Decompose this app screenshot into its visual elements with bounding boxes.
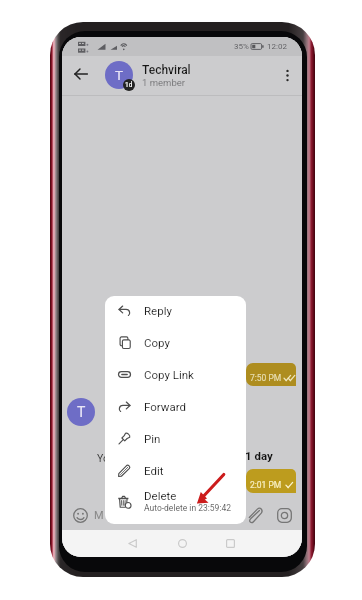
- staticText: Copy Link: [144, 368, 194, 381]
- staticText: T: [115, 67, 124, 83]
- button[interactable]: Attach: [243, 504, 265, 526]
- staticText: Reply: [144, 304, 172, 317]
- staticText: Auto-delete in 23:59:42: [144, 503, 232, 513]
- staticText: 1 day: [245, 449, 273, 462]
- button[interactable]: Back: [119, 530, 145, 556]
- button[interactable]: Edit: [105, 454, 246, 486]
- staticText: Yo: [97, 452, 109, 464]
- staticText: T: [77, 404, 86, 420]
- button[interactable]: Pin: [105, 422, 246, 454]
- button[interactable]: Copy Link: [105, 358, 246, 390]
- button[interactable]: More options: [274, 56, 300, 95]
- button[interactable]: Reply: [105, 296, 246, 326]
- button[interactable]: Back: [67, 60, 95, 88]
- staticText: 12:02: [267, 42, 287, 51]
- button[interactable]: Copy: [105, 326, 246, 358]
- staticText: 1d: [125, 81, 133, 89]
- staticText: Edit: [144, 464, 164, 477]
- staticText: 1 member: [142, 77, 185, 88]
- staticText: Copy: [144, 336, 170, 349]
- button[interactable]: Forward: [105, 390, 246, 422]
- button[interactable]: Emoji: [69, 504, 91, 526]
- staticText: 2:01 PM: [250, 480, 282, 490]
- staticText: M: [94, 509, 104, 522]
- button[interactable]: Home: [169, 530, 195, 556]
- staticText: 7:50 PM: [250, 373, 282, 383]
- button[interactable]: Delete: [105, 486, 246, 522]
- button[interactable]: Camera: [273, 504, 295, 526]
- staticText: Pin: [144, 432, 161, 445]
- staticText: Delete: [144, 489, 177, 502]
- staticText: 35%: [234, 42, 249, 51]
- staticText: Forward: [144, 400, 186, 413]
- staticText: Techviral: [142, 63, 191, 77]
- button[interactable]: Recents: [217, 530, 243, 556]
